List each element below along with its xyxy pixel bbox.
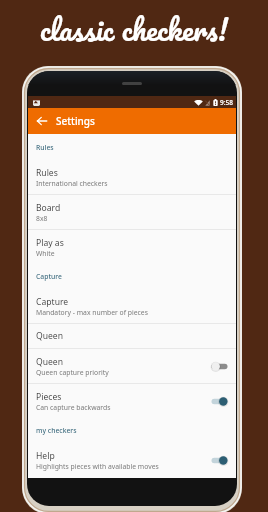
button[interactable]: Rules: [28, 160, 236, 194]
button[interactable]: Pieces: [28, 384, 236, 418]
button[interactable]: Queen: [28, 349, 236, 383]
button[interactable]: Capture: [28, 289, 236, 323]
staticText: Play as: [36, 237, 64, 249]
staticText: Capture: [36, 296, 69, 308]
staticText: White: [36, 249, 55, 258]
staticText: Board: [36, 202, 61, 214]
staticText: Help: [36, 450, 55, 462]
button[interactable]: Play as: [28, 230, 236, 264]
staticText: International checkers: [36, 179, 108, 188]
button[interactable]: On: [211, 395, 228, 408]
button[interactable]: Queen: [28, 324, 236, 348]
button[interactable]: Off: [211, 360, 228, 373]
staticText: classic checkers!: [40, 5, 228, 54]
staticText: Rules: [36, 143, 54, 152]
staticText: Pieces: [36, 391, 62, 403]
staticText: my checkers: [36, 426, 77, 435]
staticText: Can capture backwards: [36, 403, 111, 412]
staticText: Rules: [36, 167, 58, 179]
button[interactable]: On: [211, 454, 228, 467]
staticText: Queen: [36, 330, 64, 342]
staticText: Capture: [36, 272, 62, 281]
button[interactable]: Board: [28, 195, 236, 229]
button[interactable]: Navigate up: [31, 110, 53, 132]
staticText: Queen: [36, 356, 64, 368]
staticText: Highlights pieces with available moves: [36, 462, 159, 471]
staticText: Queen capture priority: [36, 368, 109, 377]
button[interactable]: Help: [28, 443, 236, 477]
staticText: 8x8: [36, 214, 48, 223]
staticText: Settings: [56, 114, 95, 128]
staticText: 9:58: [220, 98, 233, 107]
staticText: Mandatory - max number of pieces: [36, 308, 148, 317]
